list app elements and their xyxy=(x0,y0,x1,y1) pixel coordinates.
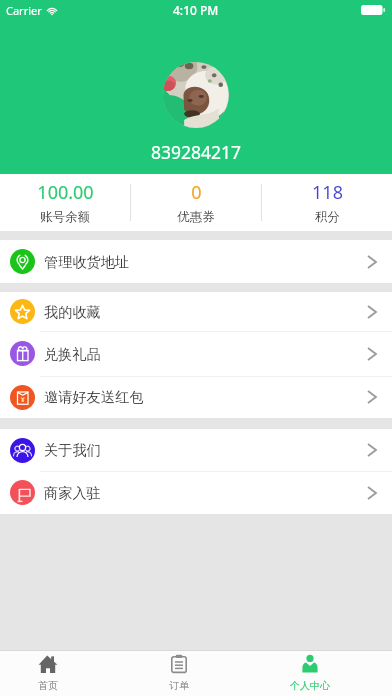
staticText: 订单 xyxy=(169,679,189,692)
staticText: 839284217 xyxy=(151,140,242,164)
button[interactable]: 兑换礼品 xyxy=(0,331,392,376)
staticText: 积分 xyxy=(315,209,340,225)
staticText: 4:10 PM xyxy=(173,2,219,18)
staticText: 兑换礼品 xyxy=(44,345,101,363)
button[interactable]: 个人中心 xyxy=(244,650,375,696)
staticText: 关于我们 xyxy=(44,441,101,459)
button[interactable]: 商家入驻 xyxy=(0,471,392,514)
staticText: 邀请好友送红包 xyxy=(44,388,144,406)
staticText: 个人中心 xyxy=(290,679,330,692)
staticText: 0 xyxy=(191,180,202,205)
staticText: 我的收藏 xyxy=(44,303,101,321)
staticText: 首页 xyxy=(38,679,58,692)
button[interactable]: 首页 xyxy=(0,650,113,696)
staticText: 优惠券 xyxy=(177,209,215,225)
button[interactable]: 关于我们 xyxy=(0,429,392,471)
button[interactable]: 邀请好友送红包 xyxy=(0,376,392,418)
staticText: 账号余额 xyxy=(40,209,90,225)
button[interactable]: 100.00 xyxy=(0,174,130,231)
button[interactable]: 118 xyxy=(262,174,392,231)
staticText: 管理收货地址 xyxy=(44,253,130,271)
staticText: Carrier xyxy=(6,3,42,18)
button[interactable]: 订单 xyxy=(113,650,244,696)
button[interactable]: 我的收藏 xyxy=(0,292,392,331)
staticText: 100.00 xyxy=(37,180,94,205)
button[interactable]: 0 xyxy=(131,174,261,231)
staticText: 商家入驻 xyxy=(44,484,101,502)
button[interactable]: 管理收货地址 xyxy=(0,240,392,283)
staticText: 118 xyxy=(312,180,343,205)
